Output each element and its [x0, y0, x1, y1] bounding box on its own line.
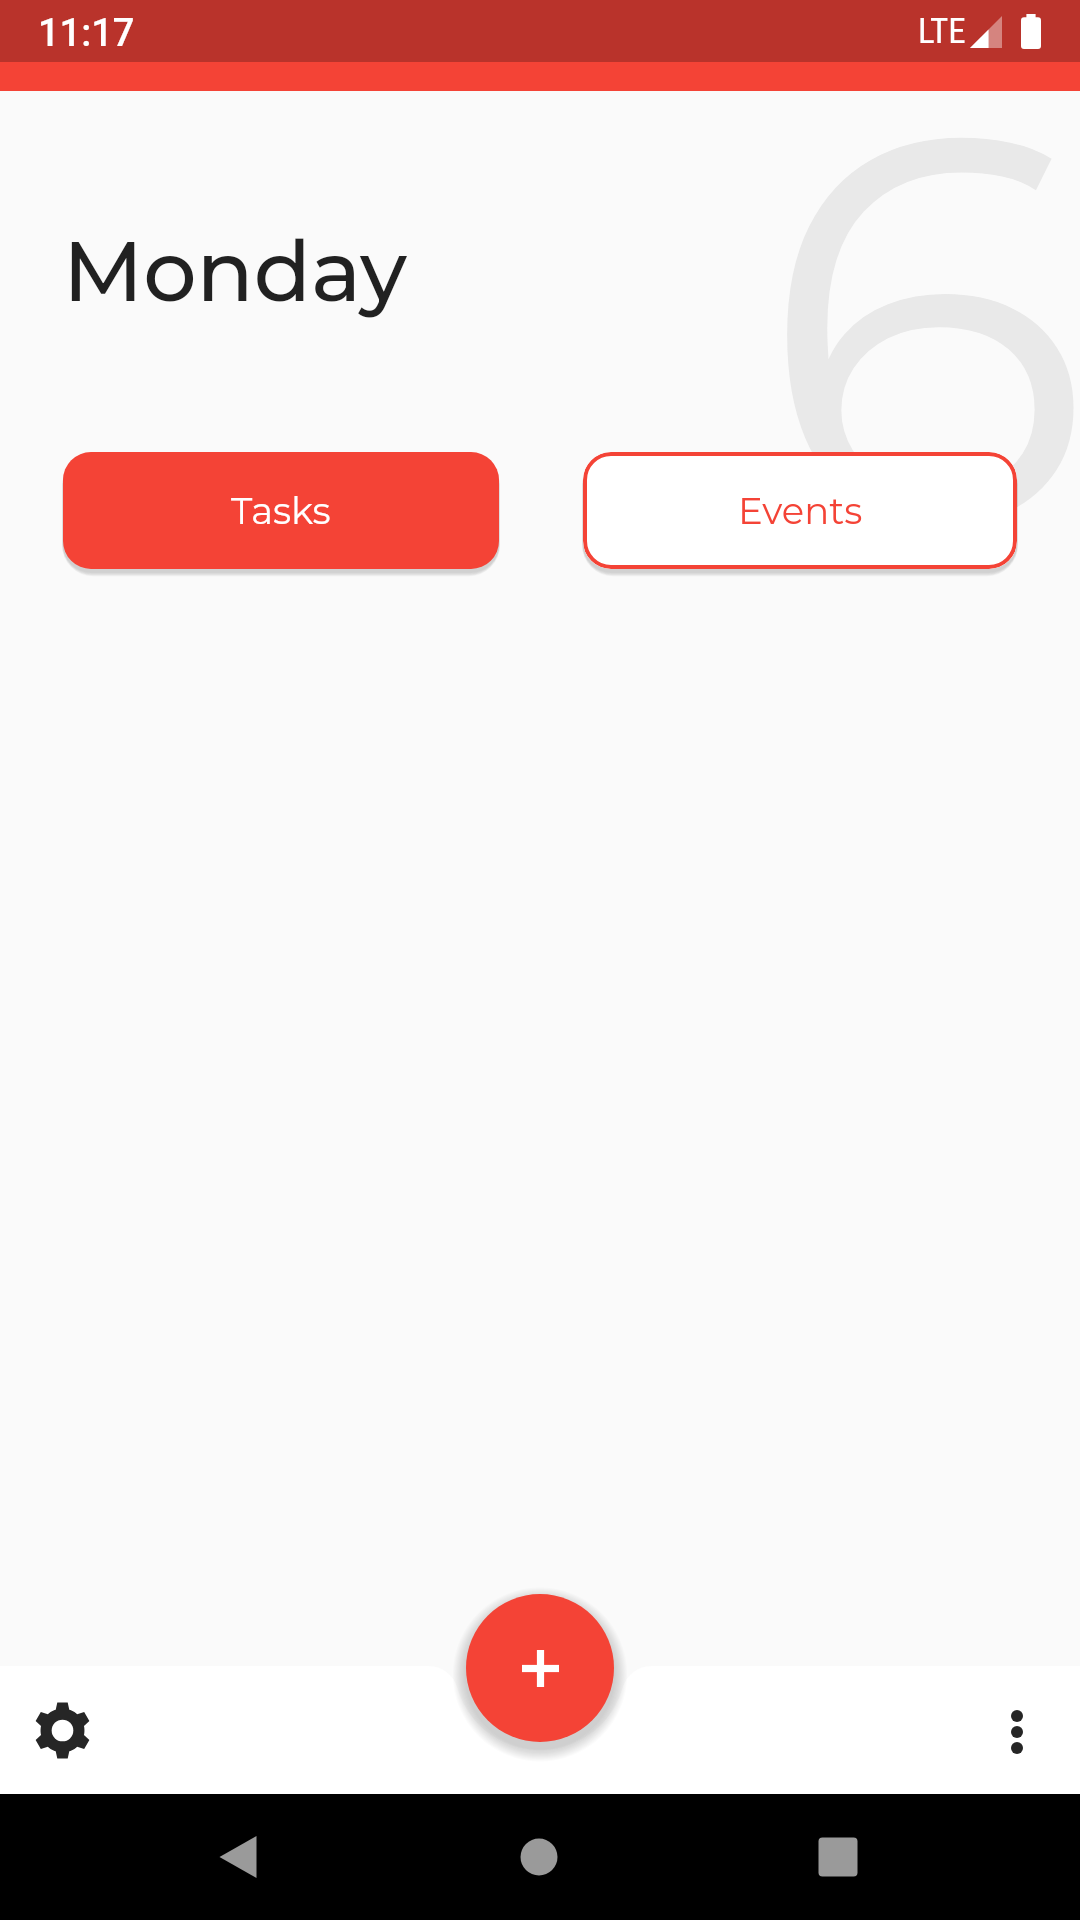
button[interactable]: Tasks	[63, 452, 499, 569]
button[interactable]: Settings	[20, 1688, 104, 1772]
staticText: Monday	[63, 220, 407, 322]
staticText: Tasks	[231, 488, 331, 533]
staticText: Events	[738, 488, 863, 533]
button[interactable]: More options	[975, 1690, 1059, 1774]
staticText: 11:17	[38, 11, 135, 56]
staticText: 6	[759, 0, 1080, 658]
button[interactable]: Events	[583, 452, 1017, 569]
button[interactable]: Add	[466, 1594, 614, 1742]
staticText: LTE	[918, 11, 966, 52]
